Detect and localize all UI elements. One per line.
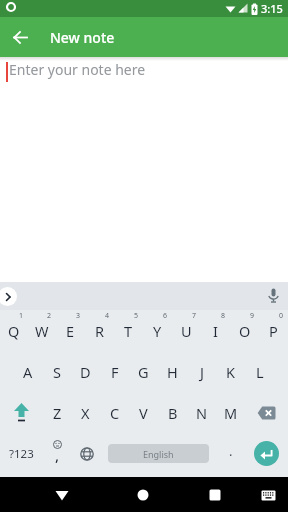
button[interactable]: I — [201, 310, 230, 351]
staticText: 4 — [105, 311, 110, 321]
staticText: F — [111, 362, 119, 382]
button[interactable]: G — [129, 351, 158, 392]
staticText: 3:15 — [261, 1, 283, 16]
staticText: New note — [50, 28, 115, 47]
staticText: ?123 — [9, 446, 34, 462]
staticText: P — [269, 321, 278, 341]
staticText: G — [138, 362, 149, 382]
button[interactable]: W — [28, 310, 56, 351]
staticText: . — [229, 442, 233, 460]
button[interactable]: P — [259, 310, 288, 351]
button[interactable]: ?123 — [0, 433, 43, 474]
button[interactable]: Y — [143, 310, 172, 351]
staticText: K — [226, 362, 235, 382]
staticText: 7 — [192, 311, 197, 321]
staticText: 2 — [47, 311, 52, 321]
button[interactable] — [48, 481, 76, 509]
staticText: T — [124, 321, 133, 341]
staticText: 5 — [134, 311, 139, 321]
button[interactable]: L — [245, 351, 274, 392]
button[interactable] — [245, 433, 288, 474]
button[interactable]: A — [14, 351, 42, 392]
staticText: I — [213, 321, 218, 341]
staticText: U — [181, 321, 192, 341]
button[interactable] — [72, 433, 101, 474]
button[interactable]: H — [158, 351, 187, 392]
staticText: 8 — [221, 311, 226, 321]
button[interactable]: K — [216, 351, 245, 392]
staticText: D — [80, 362, 91, 382]
button[interactable]: C — [100, 392, 129, 433]
staticText: N — [196, 403, 208, 423]
button[interactable] — [201, 481, 229, 509]
staticText: S — [53, 362, 61, 382]
button[interactable] — [0, 392, 43, 433]
staticText: English — [143, 448, 174, 460]
button[interactable]: Z — [43, 392, 71, 433]
button[interactable] — [0, 17, 40, 57]
button[interactable] — [129, 481, 157, 509]
staticText: Q — [8, 321, 20, 341]
staticText: C — [110, 403, 120, 423]
staticText: L — [256, 362, 264, 382]
staticText: X — [81, 403, 90, 423]
button[interactable]: O — [230, 310, 259, 351]
staticText: Y — [153, 321, 162, 341]
button[interactable]: V — [129, 392, 158, 433]
button[interactable]: T — [114, 310, 143, 351]
button[interactable]: J — [187, 351, 216, 392]
button[interactable] — [245, 392, 288, 433]
staticText: M — [224, 403, 238, 423]
staticText: 3 — [76, 311, 81, 321]
button[interactable]: B — [158, 392, 187, 433]
staticText: J — [200, 362, 204, 382]
button[interactable] — [0, 287, 17, 306]
button[interactable]: N — [187, 392, 216, 433]
staticText: H — [167, 362, 178, 382]
staticText: O — [239, 321, 251, 341]
staticText: , — [55, 445, 60, 465]
staticText: 1 — [19, 311, 24, 321]
staticText: 6 — [163, 311, 168, 321]
staticText: B — [168, 403, 178, 423]
button[interactable]: . — [216, 433, 245, 474]
button[interactable]: D — [71, 351, 100, 392]
button[interactable] — [263, 286, 283, 306]
staticText: R — [95, 321, 105, 341]
staticText: W — [35, 321, 49, 341]
staticText: 0 — [279, 311, 284, 321]
staticText: E — [66, 321, 75, 341]
staticText: Enter your note here — [9, 60, 146, 79]
button[interactable]: U — [172, 310, 201, 351]
button[interactable]: F — [100, 351, 129, 392]
button[interactable]: English — [101, 433, 216, 474]
button[interactable]: Enter your note here — [9, 60, 146, 79]
button[interactable]: E — [56, 310, 85, 351]
staticText: A — [23, 362, 33, 382]
button[interactable]: Q — [0, 310, 28, 351]
staticText: 9 — [250, 311, 255, 321]
button[interactable]: M — [216, 392, 245, 433]
button[interactable]: X — [71, 392, 100, 433]
staticText: Z — [53, 403, 62, 423]
staticText: V — [139, 403, 148, 423]
button[interactable]: , — [43, 433, 72, 474]
button[interactable]: R — [85, 310, 114, 351]
button[interactable] — [256, 483, 280, 507]
button[interactable]: S — [42, 351, 71, 392]
